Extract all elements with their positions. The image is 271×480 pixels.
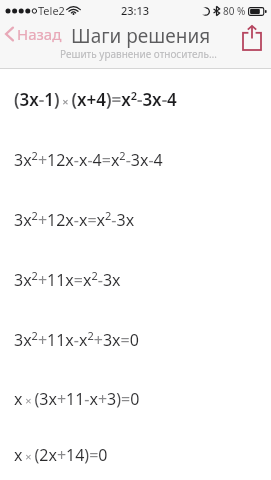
button[interactable]: 3x2+12x-x=x2-3x — [0, 189, 271, 249]
staticText: 3x2+11x=x2-3x — [14, 268, 121, 291]
staticText: x × (2x+14)=0 — [14, 444, 108, 466]
button[interactable]: 3x2+12x-x-4=x2-3x-4 — [0, 129, 271, 189]
staticText: (3x-1) × (x+4)=x2-3x-4 — [14, 88, 177, 111]
button[interactable]: (3x-1) × (x+4)=x2-3x-4 — [0, 69, 271, 129]
button[interactable]: Share — [233, 22, 271, 54]
button[interactable]: 3x2+11x=x2-3x — [0, 249, 271, 309]
button[interactable]: Назад — [0, 22, 68, 48]
staticText: Назад — [17, 24, 62, 44]
button[interactable]: x × (2x+14)=0 — [0, 429, 271, 480]
staticText: Tele2 — [38, 3, 65, 18]
button[interactable]: x × (3x+11-x+3)=0 — [0, 369, 271, 429]
staticText: Решить уравнение относитель… — [60, 47, 217, 61]
staticText: Шаги решения — [71, 23, 211, 49]
staticText: 23:13 — [121, 3, 150, 18]
staticText: 80 % — [223, 4, 246, 18]
staticText: 3x2+11x-x2+3x=0 — [14, 328, 139, 351]
button[interactable]: 3x2+11x-x2+3x=0 — [0, 309, 271, 369]
staticText: 3x2+12x-x=x2-3x — [14, 208, 135, 231]
staticText: 3x2+12x-x-4=x2-3x-4 — [14, 148, 163, 171]
staticText: x × (3x+11-x+3)=0 — [14, 388, 140, 410]
